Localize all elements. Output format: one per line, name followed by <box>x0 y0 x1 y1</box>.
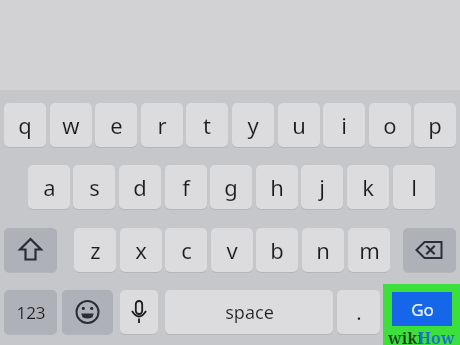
button[interactable]: c <box>165 228 207 272</box>
staticText: b <box>270 235 284 265</box>
staticText: c <box>181 235 192 265</box>
button[interactable]: x <box>120 228 162 272</box>
button[interactable]: u <box>278 103 320 147</box>
staticText: a <box>43 172 56 202</box>
button[interactable]: j <box>301 165 343 209</box>
staticText: p <box>428 110 442 140</box>
staticText: v <box>226 235 238 265</box>
button[interactable]: z <box>74 228 116 272</box>
staticText: u <box>292 110 306 140</box>
button[interactable]: space <box>165 290 333 334</box>
staticText: j <box>319 172 325 202</box>
staticText: x <box>135 235 147 265</box>
staticText: 123 <box>16 301 46 324</box>
button[interactable]: s <box>73 165 115 209</box>
staticText: i <box>341 110 347 140</box>
staticText: q <box>18 110 32 140</box>
button[interactable]: g <box>210 165 252 209</box>
button[interactable]: d <box>119 165 161 209</box>
button[interactable]: t <box>186 103 228 147</box>
button[interactable]: e <box>95 103 137 147</box>
staticText: g <box>224 172 238 202</box>
button[interactable]: p <box>414 103 456 147</box>
staticText: wiki <box>388 327 424 345</box>
button[interactable]: q <box>4 103 46 147</box>
staticText: k <box>362 172 374 202</box>
staticText: r <box>157 110 167 140</box>
button[interactable]: Dictation <box>120 290 158 334</box>
staticText: l <box>411 172 417 202</box>
button[interactable]: Shift <box>4 228 57 272</box>
staticText: e <box>110 110 123 140</box>
button[interactable]: r <box>141 103 183 147</box>
button[interactable]: Delete <box>403 228 456 272</box>
button[interactable]: k <box>347 165 389 209</box>
button[interactable]: a <box>28 165 70 209</box>
button[interactable]: Emoji <box>62 290 113 334</box>
button[interactable]: l <box>393 165 435 209</box>
button[interactable]: n <box>302 228 344 272</box>
button[interactable]: Go <box>392 292 452 326</box>
button[interactable]: o <box>369 103 411 147</box>
staticText: o <box>383 110 397 140</box>
staticText: s <box>89 172 100 202</box>
staticText: w <box>62 110 80 140</box>
staticText: f <box>182 172 190 202</box>
button[interactable]: . <box>337 290 380 334</box>
staticText: d <box>133 172 147 202</box>
staticText: h <box>270 172 284 202</box>
button[interactable]: y <box>232 103 274 147</box>
staticText: . <box>356 299 362 326</box>
staticText: How <box>418 327 455 345</box>
button[interactable]: b <box>256 228 298 272</box>
staticText: z <box>90 235 101 265</box>
button[interactable]: h <box>256 165 298 209</box>
button[interactable]: w <box>50 103 92 147</box>
staticText: Go <box>411 298 434 321</box>
staticText: n <box>316 235 330 265</box>
button[interactable]: v <box>211 228 253 272</box>
button[interactable]: m <box>348 228 390 272</box>
button[interactable]: i <box>323 103 365 147</box>
staticText: t <box>203 110 211 140</box>
staticText: space <box>225 300 274 325</box>
button[interactable]: 123 <box>4 290 57 334</box>
staticText: y <box>247 110 259 140</box>
button[interactable]: f <box>165 165 207 209</box>
staticText: m <box>359 235 380 265</box>
